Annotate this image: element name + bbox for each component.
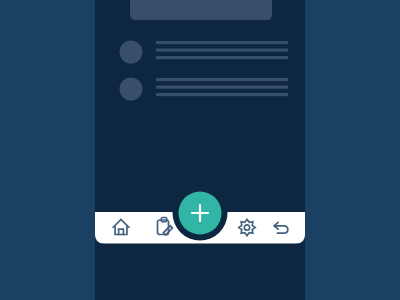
button[interactable]: Back: [262, 212, 304, 244]
button[interactable]: Notes: [145, 212, 190, 244]
button[interactable]: Settings: [226, 212, 268, 244]
button[interactable]: Home: [100, 212, 145, 244]
button[interactable]: Add: [179, 192, 222, 235]
